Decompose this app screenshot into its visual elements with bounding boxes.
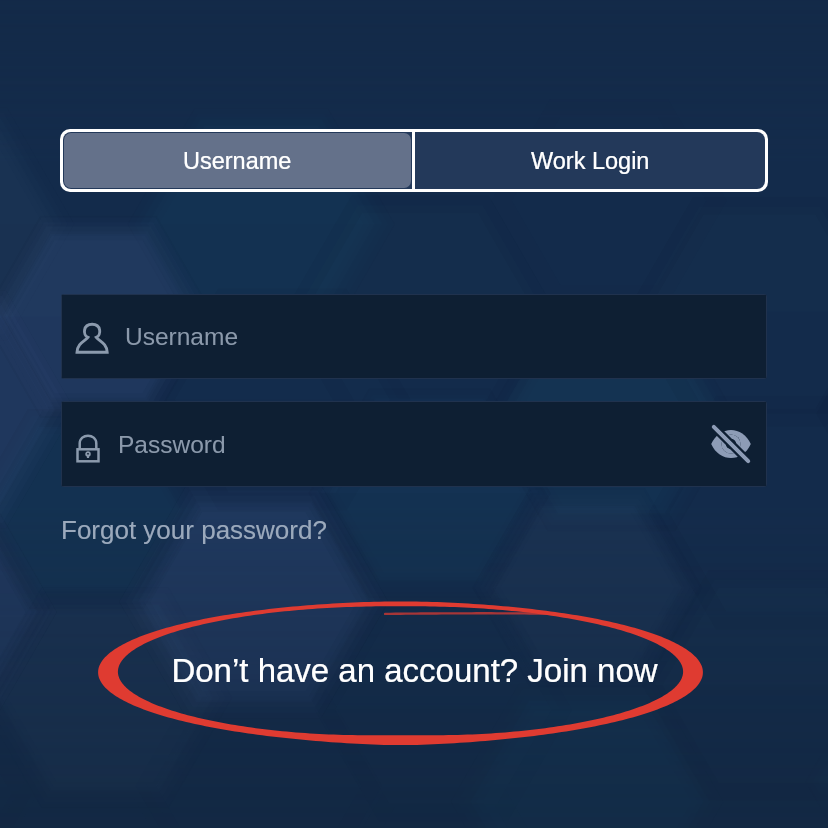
staticText: Username: [125, 323, 239, 350]
staticText: Username: [183, 148, 292, 174]
staticText: Don’t have an account? Join now: [171, 652, 658, 689]
button[interactable]: Show password: [703, 416, 759, 472]
staticText: Work Login: [531, 148, 650, 174]
button[interactable]: Forgot your password?: [61, 515, 327, 544]
button[interactable]: Don’t have an account? Join now: [0, 652, 828, 689]
button[interactable]: Username: [61, 294, 767, 379]
button[interactable]: Password: [61, 401, 767, 487]
button[interactable]: Username: [64, 133, 411, 188]
button[interactable]: Work Login: [415, 132, 765, 189]
staticText: Password: [118, 431, 226, 458]
staticText: Forgot your password?: [61, 515, 327, 544]
